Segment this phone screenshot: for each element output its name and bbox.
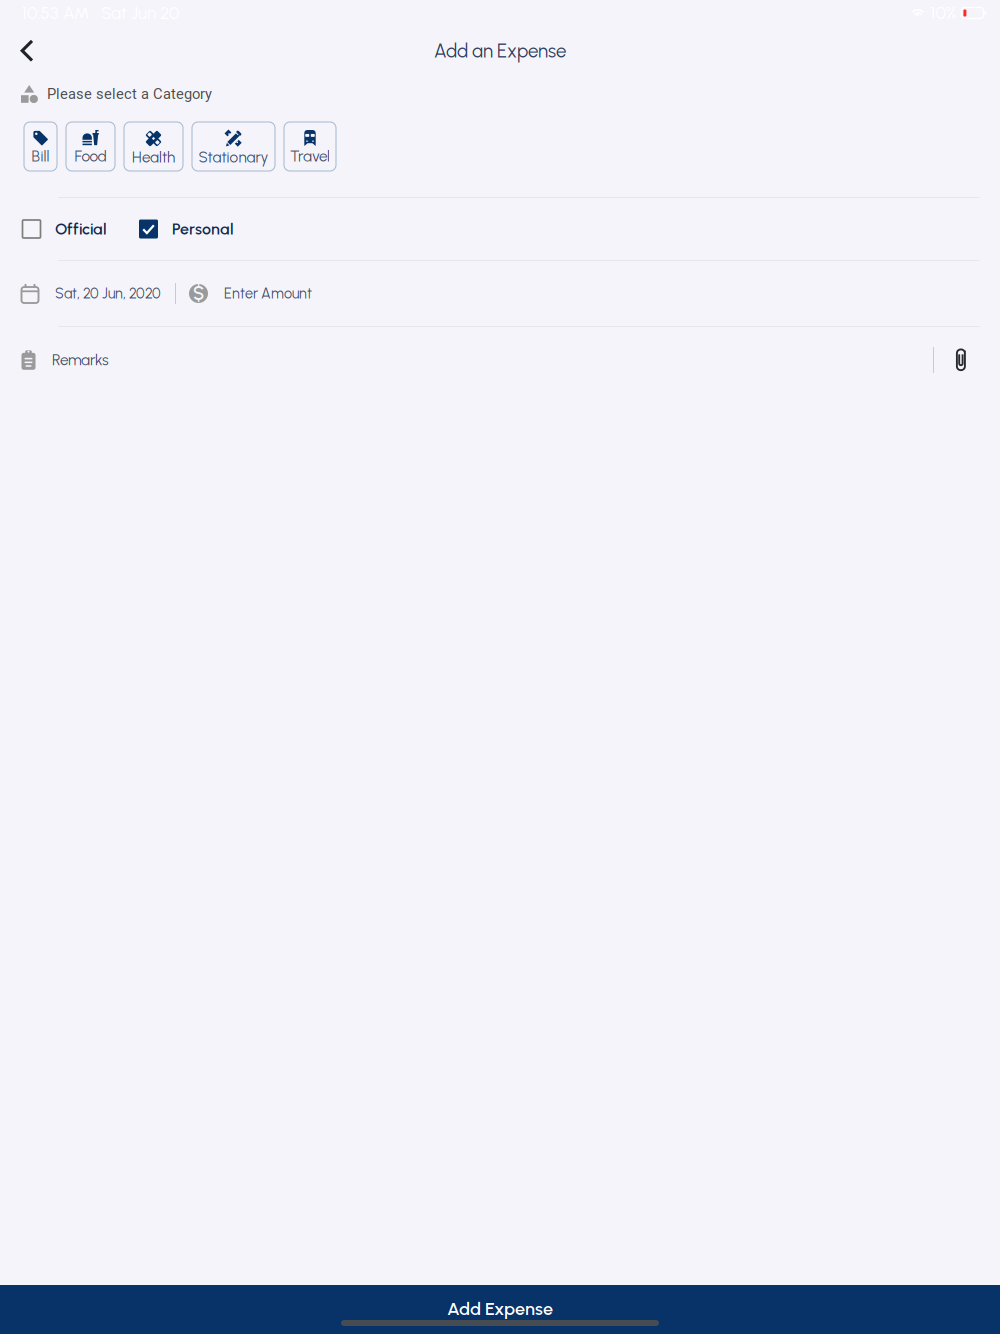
button[interactable]: Add Expense <box>0 1285 1000 1334</box>
button[interactable]: Travel <box>284 122 336 171</box>
staticText: Official <box>55 219 107 239</box>
button[interactable]: Official <box>22 210 107 248</box>
button[interactable]: Stationary <box>192 122 275 171</box>
button[interactable]: Food <box>66 122 115 171</box>
staticText: Remarks <box>52 351 109 369</box>
staticText: 10:53 AM Sat Jun 20 <box>22 3 179 23</box>
button[interactable]: Attach file <box>934 348 980 372</box>
staticText: Stationary <box>198 148 268 166</box>
staticText: Enter Amount <box>224 285 312 302</box>
staticText: $ <box>193 282 204 305</box>
staticText: Personal <box>172 219 234 239</box>
button[interactable]: Health <box>124 122 183 171</box>
staticText: Bill <box>31 147 49 165</box>
staticText: Food <box>74 147 106 165</box>
button[interactable]: Sat, 20 Jun, 2020 <box>21 284 161 303</box>
button[interactable]: $ <box>189 284 312 303</box>
staticText: Sat, 20 Jun, 2020 <box>55 285 161 302</box>
button[interactable]: Back <box>6 30 48 71</box>
staticText: Health <box>132 148 175 166</box>
staticText: 10% <box>930 3 956 23</box>
button[interactable]: Bill <box>24 122 57 171</box>
button[interactable]: Remarks <box>21 350 109 370</box>
staticText: Add an Expense <box>434 40 566 62</box>
staticText: Travel <box>290 147 330 165</box>
staticText: Add Expense <box>447 1298 553 1320</box>
button[interactable]: Personal <box>139 210 234 248</box>
staticText: Please select a Category <box>47 85 212 103</box>
